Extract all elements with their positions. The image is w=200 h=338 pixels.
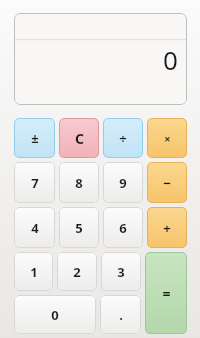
button[interactable]: Plus minus [14, 118, 55, 158]
button[interactable]: 7 [14, 162, 55, 203]
staticText: = [162, 284, 171, 303]
button[interactable]: 6 [103, 207, 143, 248]
button[interactable]: 1 [14, 252, 53, 291]
button[interactable]: 4 [14, 207, 55, 248]
button[interactable]: Decimal point [100, 295, 141, 334]
staticText: 4 [31, 219, 39, 237]
staticText: 2 [73, 263, 81, 281]
staticText: 6 [119, 219, 127, 237]
staticText: ± [31, 129, 39, 147]
button[interactable]: 5 [59, 207, 99, 248]
staticText: . [119, 306, 123, 324]
staticText: 0 [51, 306, 59, 324]
staticText: + [163, 219, 171, 237]
staticText: 9 [119, 174, 127, 192]
button[interactable]: Minus [147, 162, 187, 203]
staticText: C [75, 129, 84, 148]
button[interactable]: 9 [103, 162, 143, 203]
button[interactable]: Equals [145, 252, 187, 334]
staticText: 3 [117, 263, 125, 281]
button[interactable]: 3 [101, 252, 141, 291]
staticText: ÷ [119, 129, 127, 147]
button[interactable]: Multiply [147, 118, 187, 158]
staticText: 7 [31, 174, 39, 192]
button[interactable]: 0 [14, 295, 96, 334]
staticText: 0 [163, 42, 178, 77]
staticText: × [164, 131, 171, 146]
button[interactable]: 2 [57, 252, 97, 291]
button[interactable]: Divide [103, 118, 143, 158]
button[interactable]: Clear [59, 118, 99, 158]
button[interactable]: 8 [59, 162, 99, 203]
staticText: − [163, 174, 171, 192]
button[interactable]: Plus [147, 207, 187, 248]
staticText: 8 [75, 174, 83, 192]
staticText: 1 [30, 263, 38, 281]
staticText: 5 [75, 219, 83, 237]
